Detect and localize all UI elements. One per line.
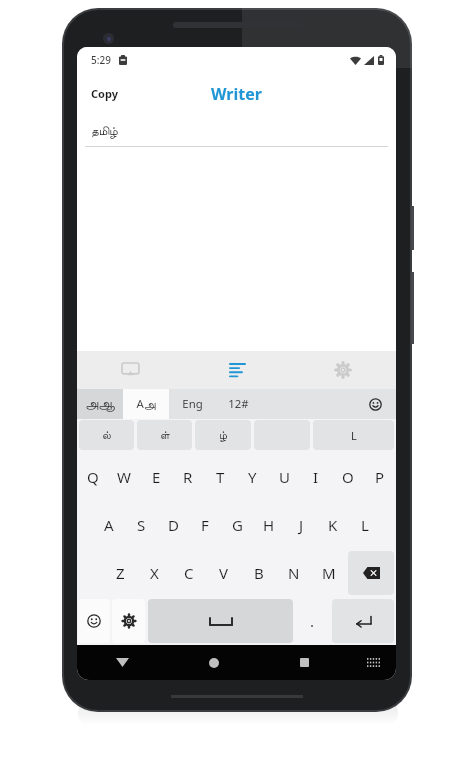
staticText: 5:29 bbox=[91, 53, 111, 67]
button[interactable]: X bbox=[137, 549, 171, 597]
staticText: ல் bbox=[102, 430, 111, 441]
button[interactable]: U bbox=[268, 452, 300, 501]
staticText: R bbox=[183, 467, 193, 487]
button[interactable]: Copy bbox=[77, 78, 132, 109]
button[interactable]: Q bbox=[77, 452, 108, 501]
button[interactable]: Y bbox=[236, 452, 268, 501]
staticText: Copy bbox=[91, 86, 118, 101]
button[interactable]: Enter bbox=[332, 599, 394, 643]
staticText: அஆ bbox=[85, 398, 115, 411]
staticText: M bbox=[322, 563, 336, 583]
button[interactable]: ல் bbox=[79, 420, 134, 450]
button[interactable]: Z bbox=[103, 549, 137, 597]
staticText: Y bbox=[248, 467, 257, 487]
button[interactable]: 12# bbox=[215, 389, 261, 419]
button[interactable]: Eng bbox=[169, 389, 215, 419]
button[interactable]: J bbox=[285, 501, 317, 549]
button[interactable]: M bbox=[311, 549, 346, 597]
staticText: V bbox=[219, 563, 229, 583]
staticText: F bbox=[201, 515, 209, 535]
staticText: A bbox=[104, 515, 114, 535]
button[interactable]: ள் bbox=[137, 420, 192, 450]
staticText: L bbox=[361, 515, 369, 535]
button[interactable]: E bbox=[140, 452, 172, 501]
button[interactable]: Emoji bbox=[261, 389, 396, 419]
button[interactable]: F bbox=[189, 501, 221, 549]
button[interactable]: Home bbox=[168, 645, 259, 680]
button[interactable]: L bbox=[349, 501, 381, 549]
button[interactable]: V bbox=[206, 549, 241, 597]
staticText: ள் bbox=[160, 430, 170, 441]
staticText: O bbox=[342, 467, 354, 487]
button[interactable]: C bbox=[171, 549, 206, 597]
button[interactable]: O bbox=[332, 452, 364, 501]
button[interactable]: D bbox=[157, 501, 189, 549]
staticText: U bbox=[279, 467, 290, 487]
button[interactable]: Emoji bbox=[78, 599, 110, 643]
staticText: J bbox=[299, 515, 304, 535]
staticText: N bbox=[288, 563, 300, 583]
button[interactable]: . bbox=[295, 599, 330, 643]
button[interactable]: ழ் bbox=[195, 420, 251, 450]
staticText: L bbox=[351, 428, 357, 443]
button[interactable]: N bbox=[276, 549, 311, 597]
staticText: K bbox=[328, 515, 338, 535]
staticText: C bbox=[184, 563, 194, 583]
staticText: Eng bbox=[182, 396, 203, 412]
staticText: S bbox=[137, 515, 146, 535]
staticText: தமிழ் bbox=[91, 125, 118, 137]
staticText: D bbox=[168, 515, 179, 535]
staticText: B bbox=[254, 563, 264, 583]
button[interactable]: Cast screen bbox=[77, 351, 184, 389]
button[interactable]: L bbox=[313, 420, 394, 450]
button[interactable]: S bbox=[125, 501, 157, 549]
button[interactable]: Format text bbox=[184, 351, 290, 389]
staticText: . bbox=[310, 611, 315, 631]
button[interactable]: Settings bbox=[290, 351, 396, 389]
button[interactable]: Switch keyboard bbox=[350, 645, 396, 680]
staticText: ழ் bbox=[219, 430, 228, 441]
button[interactable]: K bbox=[317, 501, 349, 549]
staticText: P bbox=[375, 467, 385, 487]
staticText: H bbox=[263, 515, 275, 535]
button[interactable]: T bbox=[204, 452, 236, 501]
button[interactable]: R bbox=[172, 452, 204, 501]
button[interactable]: தமிழ் bbox=[77, 115, 396, 146]
staticText: I bbox=[313, 467, 319, 487]
staticText: T bbox=[216, 467, 225, 487]
staticText: Writer bbox=[211, 83, 262, 105]
button[interactable]: W bbox=[108, 452, 140, 501]
staticText: E bbox=[152, 467, 161, 487]
button[interactable]: B bbox=[241, 549, 276, 597]
button[interactable]: H bbox=[253, 501, 285, 549]
staticText: Aஅ bbox=[136, 396, 156, 412]
button[interactable]: A bbox=[92, 501, 125, 549]
button[interactable]: Aஅ bbox=[123, 389, 169, 419]
button[interactable]: Keyboard settings bbox=[112, 599, 145, 643]
staticText: G bbox=[232, 515, 243, 535]
staticText: W bbox=[117, 467, 131, 487]
button[interactable]: Back bbox=[77, 645, 168, 680]
staticText: X bbox=[150, 563, 159, 583]
staticText: 12# bbox=[228, 396, 249, 412]
button[interactable]: I bbox=[300, 452, 332, 501]
button[interactable]: P bbox=[364, 452, 396, 501]
button[interactable]: Space bbox=[148, 599, 293, 643]
button[interactable]: அஆ bbox=[77, 389, 123, 419]
staticText: Z bbox=[116, 563, 125, 583]
button[interactable]: Recent apps bbox=[259, 645, 350, 680]
staticText: Q bbox=[87, 467, 99, 487]
button[interactable]: G bbox=[221, 501, 253, 549]
button[interactable]: Backspace bbox=[348, 551, 394, 595]
